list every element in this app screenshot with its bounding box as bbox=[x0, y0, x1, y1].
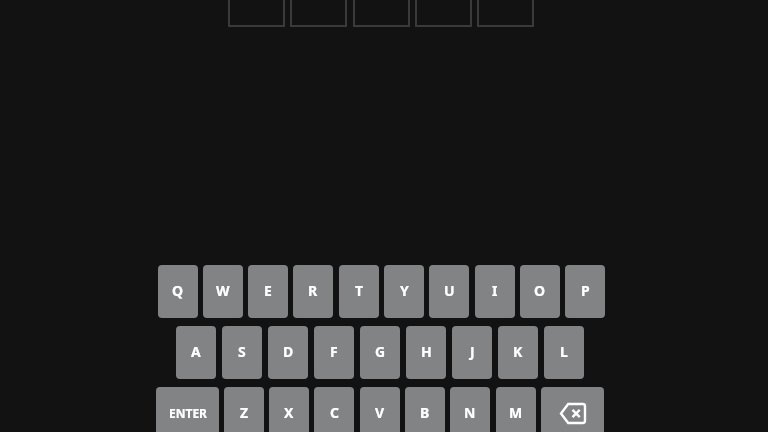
button[interactable]: Q bbox=[158, 265, 198, 318]
staticText: F bbox=[330, 342, 338, 361]
staticText: D bbox=[283, 342, 294, 361]
button[interactable]: J bbox=[452, 326, 492, 379]
staticText: Y bbox=[400, 281, 409, 300]
staticText: E bbox=[264, 281, 272, 300]
button[interactable]: O bbox=[520, 265, 560, 318]
staticText: Z bbox=[240, 403, 249, 422]
staticText: V bbox=[375, 403, 385, 422]
button[interactable]: B bbox=[405, 387, 445, 432]
staticText: ENTER bbox=[169, 405, 207, 421]
button[interactable]: R bbox=[293, 265, 333, 318]
staticText: M bbox=[509, 403, 523, 422]
button[interactable]: M bbox=[496, 387, 536, 432]
staticText: O bbox=[534, 281, 546, 300]
button[interactable]: Y bbox=[384, 265, 424, 318]
button[interactable]: K bbox=[498, 326, 538, 379]
button[interactable]: ENTER bbox=[156, 387, 219, 432]
button[interactable]: Backspace bbox=[541, 387, 604, 432]
button[interactable]: F bbox=[314, 326, 354, 379]
button[interactable]: U bbox=[429, 265, 469, 318]
button[interactable]: L bbox=[544, 326, 584, 379]
staticText: B bbox=[420, 403, 430, 422]
staticText: T bbox=[355, 281, 364, 300]
staticText: S bbox=[238, 342, 246, 361]
button[interactable]: C bbox=[314, 387, 354, 432]
button[interactable]: H bbox=[406, 326, 446, 379]
staticText: I bbox=[492, 281, 498, 300]
button[interactable]: S bbox=[222, 326, 262, 379]
staticText: Q bbox=[172, 281, 184, 300]
button[interactable]: P bbox=[565, 265, 605, 318]
button[interactable]: G bbox=[360, 326, 400, 379]
staticText: W bbox=[216, 281, 230, 300]
button[interactable]: I bbox=[475, 265, 515, 318]
button[interactable]: Z bbox=[224, 387, 264, 432]
button[interactable]: T bbox=[339, 265, 379, 318]
button[interactable]: N bbox=[450, 387, 490, 432]
button[interactable]: W bbox=[203, 265, 243, 318]
button[interactable]: X bbox=[269, 387, 309, 432]
staticText: C bbox=[330, 403, 339, 422]
staticText: U bbox=[444, 281, 455, 300]
staticText: G bbox=[375, 342, 386, 361]
staticText: L bbox=[560, 342, 568, 361]
staticText: H bbox=[421, 342, 432, 361]
staticText: A bbox=[191, 342, 201, 361]
button[interactable]: E bbox=[248, 265, 288, 318]
staticText: R bbox=[308, 281, 318, 300]
staticText: J bbox=[470, 342, 475, 361]
staticText: P bbox=[581, 281, 590, 300]
staticText: N bbox=[464, 403, 476, 422]
button[interactable]: A bbox=[176, 326, 216, 379]
staticText: K bbox=[513, 342, 523, 361]
button[interactable]: V bbox=[360, 387, 400, 432]
button[interactable]: D bbox=[268, 326, 308, 379]
staticText: X bbox=[284, 403, 294, 422]
